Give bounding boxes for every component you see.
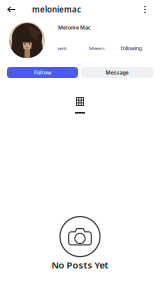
button[interactable]: Posts <box>0 78 160 114</box>
button[interactable]: Follow <box>7 67 78 78</box>
button[interactable]: following <box>114 44 148 52</box>
staticText: followers <box>89 45 105 51</box>
staticText: Message <box>105 69 128 76</box>
button[interactable]: followers <box>79 44 114 52</box>
staticText: posts <box>58 45 67 51</box>
staticText: No Posts Yet <box>51 259 108 271</box>
button[interactable]: More options <box>136 0 154 19</box>
button[interactable]: Back <box>1 0 22 19</box>
button[interactable]: posts <box>45 44 79 52</box>
staticText: Follow <box>34 69 51 76</box>
button[interactable]: Message <box>81 67 153 78</box>
staticText: meloniemac <box>32 4 81 15</box>
staticText: Melonie Mac <box>58 24 91 31</box>
staticText: following <box>121 44 142 52</box>
